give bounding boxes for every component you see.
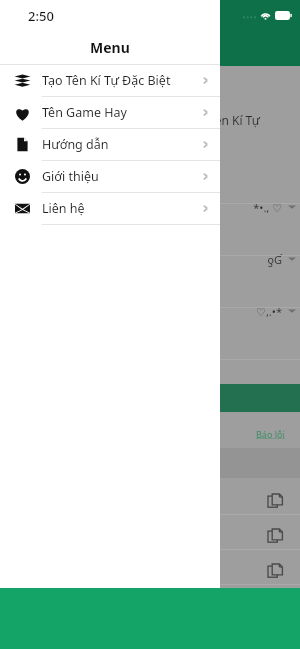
staticText: 2:50: [28, 7, 54, 25]
button[interactable]: Tạo Tên Kí Tự Đặc Biệt: [0, 65, 220, 97]
button[interactable]: Copy: [196, 559, 300, 583]
staticText: Tạo Tên Kí Tự Đặc Biệt: [42, 72, 171, 89]
button[interactable]: Tên Game Hay: [0, 97, 220, 129]
staticText: Giới thiệu: [42, 168, 99, 185]
staticText: Tên Game Hay: [42, 104, 127, 121]
staticText: Báo lỗi: [256, 428, 285, 440]
button[interactable]: ♡,.•*: [196, 300, 300, 322]
button[interactable]: Copy: [196, 489, 300, 513]
button[interactable]: Copy: [196, 524, 300, 548]
button[interactable]: [196, 384, 300, 412]
staticText: ♡,.•*: [256, 304, 282, 319]
staticText: Liên hệ: [42, 200, 85, 217]
button[interactable]: *•., ♡: [196, 196, 300, 218]
staticText: *•., ♡: [253, 200, 282, 215]
staticText: ƍƓ: [267, 252, 282, 267]
button[interactable]: Giới thiệu: [0, 161, 220, 193]
button[interactable]: ƍƓ: [196, 248, 300, 270]
button[interactable]: Báo lỗi: [256, 428, 285, 440]
staticText: Tạo Tên Kí Tự: [186, 112, 260, 128]
staticText: Menu: [90, 38, 130, 57]
button[interactable]: Hướng dẫn: [0, 129, 220, 161]
button[interactable]: Liên hệ: [0, 193, 220, 225]
staticText: Hướng dẫn: [42, 136, 109, 153]
